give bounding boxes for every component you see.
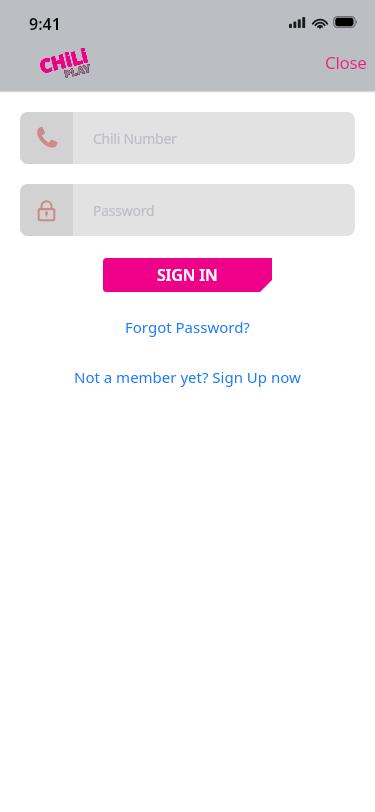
- button[interactable]: Forgot Password?: [119, 311, 256, 343]
- staticText: CHiLi: [37, 42, 90, 80]
- staticText: CHiLi: [37, 42, 90, 80]
- button[interactable]: SIGN IN: [103, 258, 272, 292]
- staticText: PLAY: [63, 61, 92, 81]
- staticText: PLAY: [63, 61, 92, 81]
- staticText: CHiLi: [37, 42, 90, 80]
- staticText: CHiLi: [37, 42, 90, 80]
- staticText: PLAY: [63, 61, 92, 81]
- button[interactable]: Password: [20, 184, 355, 236]
- staticText: Password: [93, 201, 155, 220]
- staticText: Chili Number: [93, 129, 177, 148]
- staticText: PLAY: [63, 61, 92, 81]
- button[interactable]: Close: [313, 44, 375, 81]
- staticText: CHiLi: [37, 42, 90, 80]
- staticText: PLAY: [63, 61, 92, 81]
- staticText: PLAY: [63, 61, 92, 81]
- staticText: PLAY: [63, 61, 92, 81]
- staticText: CHiLi: [37, 42, 90, 80]
- staticText: CHiLi: [37, 42, 90, 80]
- staticText: PLAY: [63, 61, 92, 81]
- staticText: Close: [325, 51, 367, 74]
- button[interactable]: Phone number: [20, 112, 355, 164]
- staticText: PLAY: [63, 61, 92, 81]
- staticText: 9:41: [29, 13, 61, 35]
- staticText: CHiLi: [37, 42, 90, 80]
- staticText: SIGN IN: [157, 264, 218, 286]
- staticText: CHiLi: [37, 42, 90, 80]
- button[interactable]: Chili Play home: [39, 48, 91, 78]
- button[interactable]: Not a member yet? Sign Up now: [68, 361, 307, 393]
